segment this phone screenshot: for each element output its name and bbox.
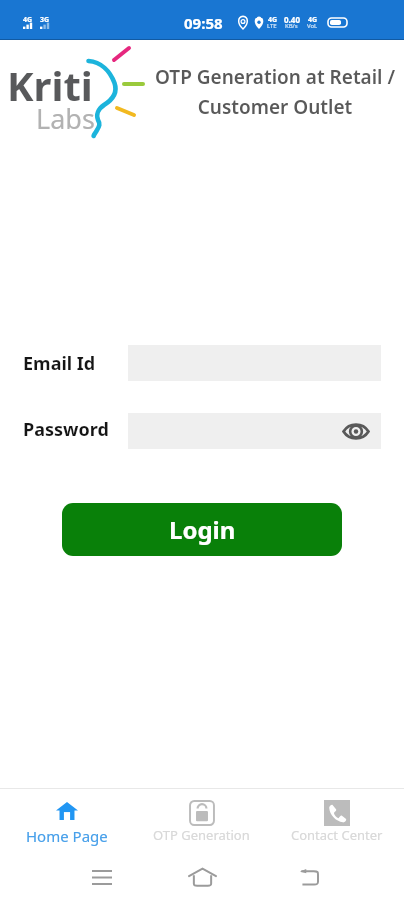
button[interactable]: Contact Center <box>269 789 404 844</box>
button[interactable]: Recent apps <box>82 860 122 894</box>
button[interactable]: Show password <box>338 413 373 449</box>
button[interactable]: Back <box>288 860 328 894</box>
staticText: 4G <box>308 15 318 25</box>
staticText: LTE <box>267 22 277 30</box>
staticText: Kriti <box>7 58 93 112</box>
button[interactable] <box>128 413 381 449</box>
button[interactable]: Home Page <box>0 789 134 846</box>
staticText: Password <box>23 417 109 442</box>
staticText: OTP Generation <box>153 826 250 844</box>
button[interactable]: Login <box>62 503 342 556</box>
staticText: 4G <box>268 15 278 25</box>
staticText: OTP Generation at Retail / Customer Outl… <box>148 64 402 119</box>
staticText: Login <box>169 513 236 546</box>
staticText: Labs <box>36 100 95 137</box>
staticText: Email Id <box>23 351 96 376</box>
staticText: 4G <box>23 15 33 25</box>
staticText: Home Page <box>26 826 108 846</box>
staticText: 0.40 <box>284 14 300 25</box>
button[interactable]: OTP Generation <box>134 789 269 844</box>
staticText: KB/s <box>285 22 298 30</box>
staticText: 3G <box>40 15 50 25</box>
staticText: 09:58 <box>184 13 223 33</box>
staticText: VoL <box>307 22 318 30</box>
button[interactable]: Home <box>182 860 222 894</box>
staticText: Contact Center <box>291 826 383 844</box>
